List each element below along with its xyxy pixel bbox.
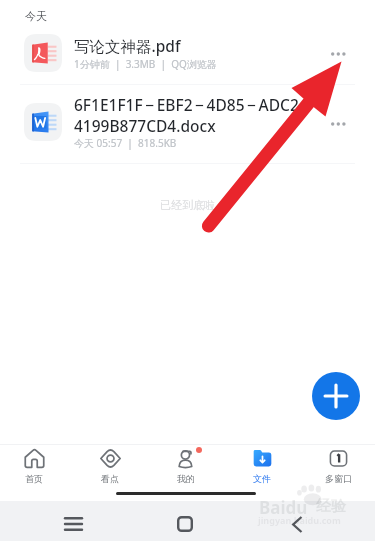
staticText: 文件 (253, 473, 271, 484)
button[interactable]: Back (273, 504, 321, 541)
staticText: 4199B877CD4.docx (74, 115, 216, 136)
staticText: 经验 (316, 497, 346, 516)
staticText: 看点 (101, 473, 119, 484)
button[interactable]: 我的 (156, 445, 216, 491)
staticText: 今天 (25, 9, 47, 23)
button[interactable]: 首页 (4, 445, 64, 491)
button[interactable]: 6F1E1F1F − EBF2 − 4D85 − ADC2 − (0, 85, 375, 163)
staticText: 写论文神器.pdf (74, 35, 181, 56)
staticText: 6F1E1F1F − EBF2 − 4D85 − ADC2 − (74, 94, 313, 115)
staticText: Baidu (259, 496, 308, 519)
button[interactable]: 写论文神器.pdf (0, 30, 375, 84)
button[interactable]: More options for 4199B877CD4.docx (316, 102, 360, 146)
button[interactable]: Home (161, 504, 209, 541)
button[interactable]: More options for 写论文神器.pdf (316, 32, 360, 76)
staticText: 我的 (177, 473, 195, 484)
staticText: 今天 05:57 | 818.5KB (74, 136, 177, 150)
button[interactable]: 文件 (232, 445, 292, 491)
staticText: 多窗口 (325, 473, 352, 484)
button[interactable]: Recent apps (49, 504, 97, 541)
button[interactable]: 多窗口 (308, 445, 368, 491)
staticText: 1分钟前 | 3.3MB | QQ浏览器 (74, 57, 217, 71)
button[interactable]: 看点 (80, 445, 140, 491)
button[interactable]: Add file (312, 372, 360, 420)
staticText: 首页 (25, 473, 43, 484)
staticText: jingyan.baidu.com (258, 514, 341, 526)
staticText: 已经到底啦 (0, 198, 375, 212)
